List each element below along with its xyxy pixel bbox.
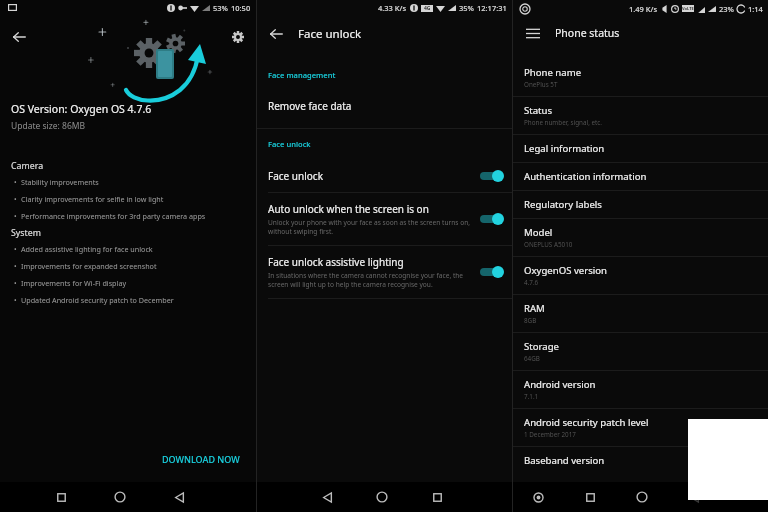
staticText: 10:50: [231, 3, 251, 13]
staticText: Face unlock assistive lighting: [268, 255, 404, 269]
staticText: Face unlock: [298, 26, 362, 42]
staticText: Baseband version: [524, 454, 605, 467]
staticText: Update size: 86MB: [11, 120, 86, 132]
staticText: •: [14, 178, 17, 188]
staticText: Android version: [524, 378, 596, 391]
staticText: •: [14, 245, 17, 255]
staticText: 12:17:31: [477, 3, 507, 13]
button[interactable]: Back: [263, 21, 289, 47]
button[interactable]: Remove face data: [257, 90, 512, 122]
button[interactable]: Phone name: [513, 59, 768, 96]
staticText: •: [14, 212, 17, 222]
staticText: •: [14, 296, 17, 306]
staticText: Auto unlock when the screen is on: [268, 202, 429, 216]
staticText: DOWNLOAD NOW: [162, 453, 240, 465]
staticText: 4G: [424, 5, 431, 12]
button[interactable]: Toggle: [478, 265, 504, 279]
staticText: 1.49 K/s: [629, 4, 658, 14]
staticText: Unlock your phone with your face as soon…: [268, 218, 472, 236]
button[interactable]: Face unlock assistive lighting: [257, 246, 512, 298]
staticText: 23%: [719, 4, 734, 14]
staticText: Status: [524, 104, 553, 117]
staticText: 1:14: [748, 4, 763, 14]
staticText: System: [11, 227, 41, 239]
button[interactable]: Home: [629, 484, 655, 510]
staticText: Clarity improvements for selfie in low l…: [21, 194, 164, 204]
staticText: 35%: [459, 3, 474, 13]
button[interactable]: Accessibility: [525, 484, 551, 510]
button[interactable]: Toggle: [478, 169, 504, 183]
staticText: Android security patch level: [524, 416, 649, 429]
button[interactable]: Back: [166, 484, 192, 510]
button[interactable]: Toggle: [478, 212, 504, 226]
staticText: Stability improvements: [21, 177, 99, 187]
staticText: OxygenOS version: [524, 264, 608, 277]
staticText: •: [14, 279, 17, 289]
button[interactable]: Face unlock: [257, 160, 512, 192]
staticText: Phone number, signal, etc.: [524, 118, 603, 127]
staticText: Face unlock: [268, 169, 323, 183]
staticText: 4.7.6: [524, 278, 539, 287]
staticText: Phone name: [524, 66, 582, 79]
button[interactable]: Home: [107, 484, 133, 510]
button[interactable]: Back: [6, 24, 32, 50]
staticText: Added assistive lighting for face unlock: [21, 244, 153, 254]
button[interactable]: DOWNLOAD NOW: [158, 450, 244, 468]
staticText: OnePlus 5T: [524, 80, 558, 89]
button[interactable]: Baseband version: [513, 447, 768, 474]
staticText: 8GB: [524, 316, 537, 325]
button[interactable]: Model: [513, 219, 768, 256]
staticText: Legal information: [524, 142, 605, 155]
staticText: Performance improvements for 3rd party c…: [21, 211, 206, 221]
staticText: OS Version: Oxygen OS 4.7.6: [11, 102, 152, 116]
button[interactable]: Android security patch level: [513, 409, 768, 446]
staticText: ONEPLUS A5010: [524, 240, 573, 249]
button[interactable]: Back: [681, 484, 707, 510]
staticText: RAM: [524, 302, 545, 315]
button[interactable]: RAM: [513, 295, 768, 332]
staticText: 53%: [213, 3, 228, 13]
button[interactable]: Back: [314, 484, 340, 510]
button[interactable]: Home: [369, 484, 395, 510]
button[interactable]: Authentication information: [513, 163, 768, 190]
button[interactable]: Status: [513, 97, 768, 134]
button[interactable]: Android version: [513, 371, 768, 408]
staticText: 7.1.1: [524, 392, 539, 401]
staticText: Regulatory labels: [524, 198, 602, 211]
staticText: VoLTE: [682, 6, 694, 11]
staticText: Remove face data: [268, 99, 352, 113]
staticText: Storage: [524, 340, 559, 353]
button[interactable]: Regulatory labels: [513, 191, 768, 218]
button[interactable]: Settings: [225, 24, 251, 50]
staticText: Updated Android security patch to Decemb…: [21, 295, 174, 305]
button[interactable]: Recents: [577, 484, 603, 510]
staticText: Improvements for Wi-Fi display: [21, 278, 127, 288]
staticText: Model: [524, 226, 553, 239]
button[interactable]: Recents: [48, 484, 74, 510]
staticText: •: [14, 262, 17, 272]
button[interactable]: Recents: [424, 484, 450, 510]
button[interactable]: Auto unlock when the screen is on: [257, 193, 512, 245]
staticText: •: [14, 195, 17, 205]
staticText: Phone status: [555, 26, 620, 40]
button[interactable]: Menu: [521, 21, 545, 45]
staticText: Face management: [268, 70, 336, 80]
staticText: Authentication information: [524, 170, 647, 183]
staticText: Improvements for expanded screenshot: [21, 261, 157, 271]
staticText: 4.33 K/s: [378, 3, 407, 13]
staticText: 1 December 2017: [524, 430, 576, 439]
button[interactable]: Storage: [513, 333, 768, 370]
button[interactable]: OxygenOS version: [513, 257, 768, 294]
staticText: Face unlock: [268, 139, 311, 149]
staticText: Camera: [11, 160, 44, 172]
button[interactable]: Legal information: [513, 135, 768, 162]
staticText: In situations where the camera cannot re…: [268, 271, 472, 289]
staticText: 64GB: [524, 354, 540, 363]
